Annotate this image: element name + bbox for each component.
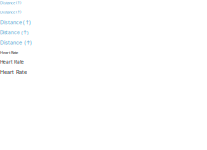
- staticText: Distance (↑): [0, 0, 21, 5]
- staticText: Distance (↑): [0, 9, 21, 15]
- staticText: Heart Rate: [0, 59, 24, 65]
- staticText: Heart Rate: [0, 69, 27, 75]
- staticText: Heart Rate: [0, 50, 18, 55]
- staticText: Distance (↑): [0, 30, 29, 35]
- staticText: Distance (↑): [0, 19, 31, 26]
- staticText: Distance (↑): [0, 39, 32, 46]
